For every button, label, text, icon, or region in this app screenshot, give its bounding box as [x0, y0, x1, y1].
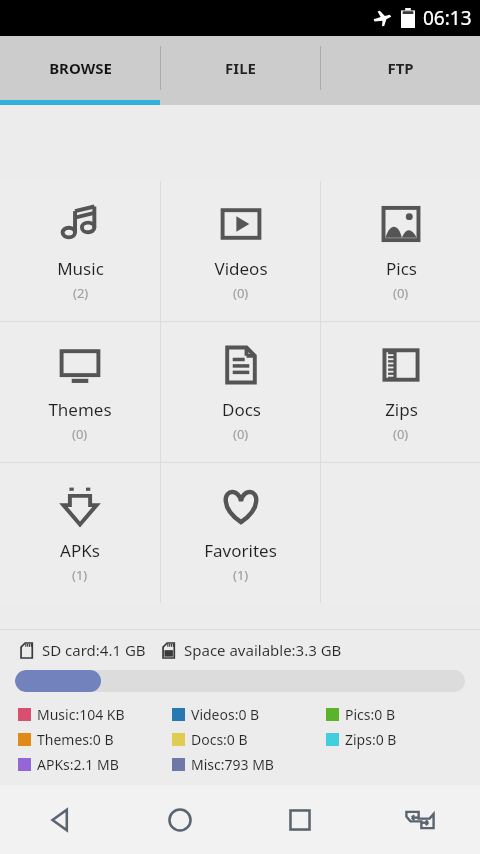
button[interactable]: FTP: [321, 36, 480, 100]
button[interactable]: Back: [0, 785, 120, 854]
staticText: Pics: [386, 257, 417, 280]
staticText: Themes:0 B: [37, 730, 114, 749]
staticText: Videos: [214, 257, 268, 280]
staticText: (1): [72, 566, 88, 584]
staticText: (0): [72, 425, 88, 443]
button[interactable]: Favorites: [161, 463, 320, 603]
staticText: Zips:0 B: [345, 730, 397, 749]
staticText: APKs: [60, 539, 100, 562]
staticText: (0): [233, 425, 249, 443]
staticText: Music: [57, 257, 104, 280]
staticText: (0): [233, 284, 249, 302]
button[interactable]: APKs: [0, 463, 160, 603]
staticText: FILE: [225, 58, 256, 78]
staticText: Docs: [222, 398, 261, 421]
staticText: (0): [393, 425, 409, 443]
staticText: FTP: [387, 58, 414, 78]
staticText: (2): [73, 284, 89, 302]
staticText: Misc:793 MB: [191, 755, 274, 774]
staticText: Music:104 KB: [37, 705, 125, 724]
button[interactable]: Pics: [321, 181, 480, 321]
button[interactable]: Recents: [240, 785, 360, 854]
staticText: Pics:0 B: [345, 705, 396, 724]
staticText: Space available:3.3 GB: [184, 640, 342, 660]
staticText: APKs:2.1 MB: [37, 755, 119, 774]
button[interactable]: Videos: [161, 181, 320, 321]
staticText: Docs:0 B: [191, 730, 248, 749]
button[interactable]: Home: [120, 785, 240, 854]
staticText: Videos:0 B: [191, 705, 260, 724]
button[interactable]: Zips: [321, 322, 480, 462]
button[interactable]: Themes: [0, 322, 160, 462]
staticText: Zips: [385, 398, 418, 421]
staticText: BROWSE: [49, 58, 112, 78]
button[interactable]: Switch apps: [360, 785, 480, 854]
staticText: Favorites: [204, 539, 277, 562]
button[interactable]: BROWSE: [0, 36, 160, 100]
staticText: (1): [233, 566, 249, 584]
staticText: 06:13: [423, 5, 472, 31]
staticText: (0): [393, 284, 409, 302]
button[interactable]: FILE: [161, 36, 320, 100]
button[interactable]: Docs: [161, 322, 320, 462]
button[interactable]: Music: [0, 181, 160, 321]
staticText: SD card:4.1 GB: [42, 640, 146, 660]
staticText: Themes: [48, 398, 112, 421]
